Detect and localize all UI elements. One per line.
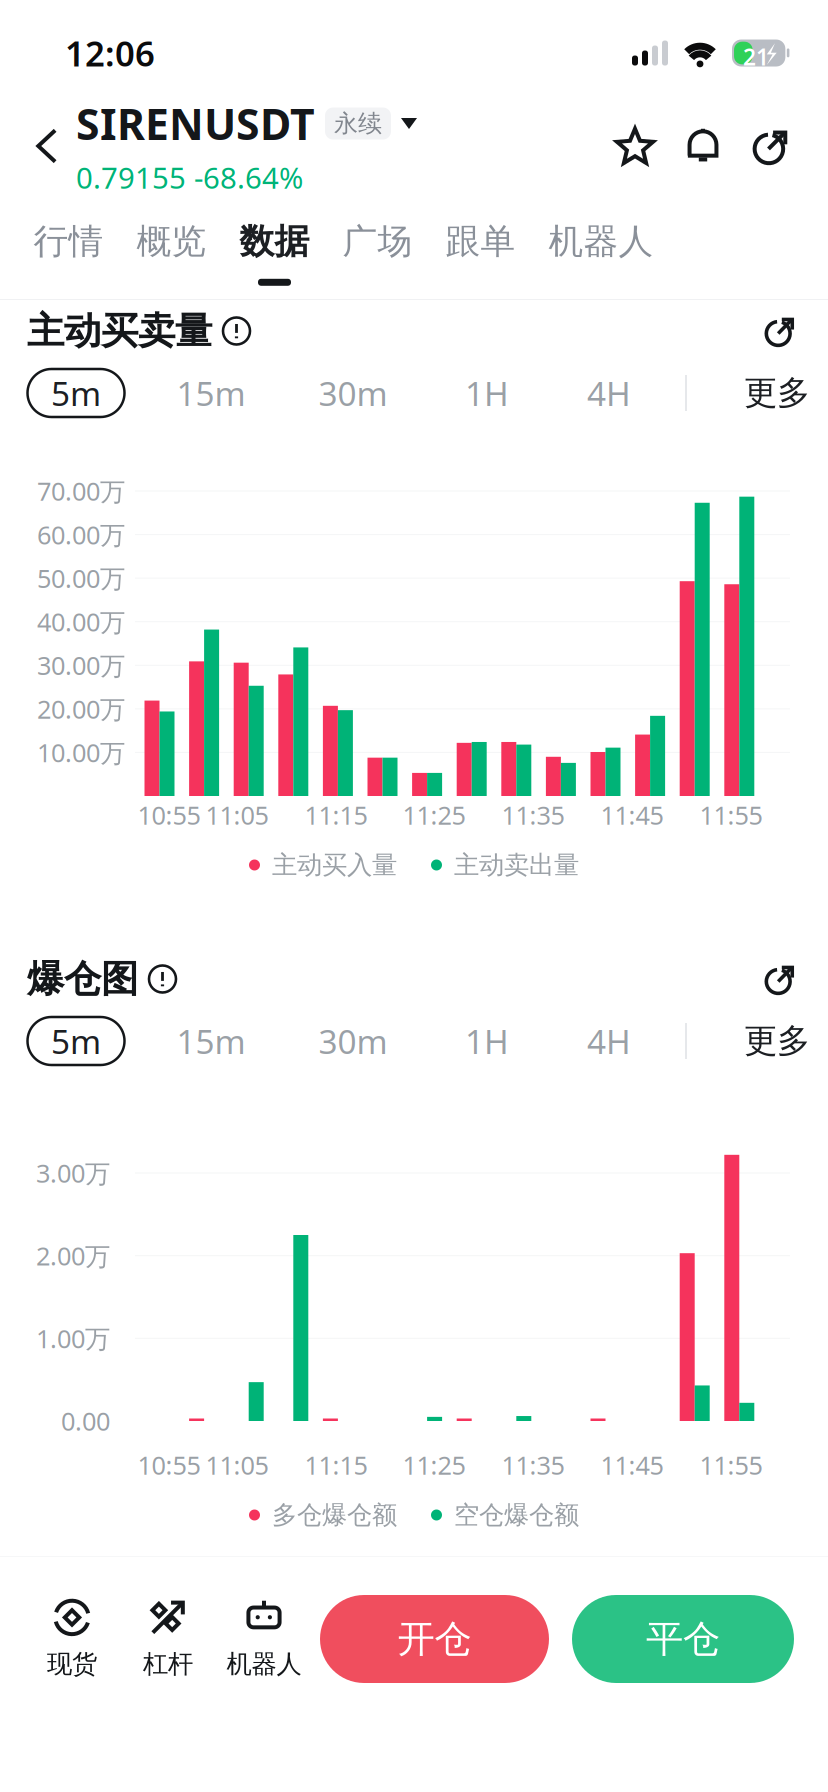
staticText: 数据 xyxy=(239,220,309,263)
staticText: 4H xyxy=(587,1019,631,1063)
button[interactable]: 开仓 xyxy=(320,1595,549,1683)
staticText: 11:15 xyxy=(304,1448,367,1482)
staticText: 机器人 xyxy=(226,1648,301,1679)
staticText: 1H xyxy=(465,371,509,415)
button[interactable]: Share xyxy=(750,125,792,167)
staticText: 行情 xyxy=(33,220,103,263)
staticText: 50.00万 xyxy=(37,561,125,595)
staticText: 爆仓图 xyxy=(27,956,138,1002)
staticText: 70.00万 xyxy=(37,474,125,508)
staticText: 11:05 xyxy=(205,798,268,832)
staticText: 40.00万 xyxy=(37,605,125,638)
staticText: 20.00万 xyxy=(37,692,125,726)
button[interactable]: 数据 xyxy=(223,220,326,286)
staticText: 3.00万 xyxy=(36,1156,110,1190)
staticText: 更多 xyxy=(744,1020,810,1061)
staticText: 10.00万 xyxy=(37,736,125,769)
button[interactable]: Expand xyxy=(762,961,798,997)
button[interactable]: Expand xyxy=(762,313,798,349)
button[interactable]: 跟单 xyxy=(429,220,532,286)
staticText: 多仓爆仓额 xyxy=(272,1499,397,1530)
staticText: 0.79155 -68.64% xyxy=(76,158,303,197)
staticText: 60.00万 xyxy=(37,518,125,551)
button[interactable]: 5m xyxy=(27,1017,124,1065)
staticText: 主动买入量 xyxy=(272,849,397,880)
staticText: 主动卖出量 xyxy=(454,849,579,880)
staticText: 11:25 xyxy=(402,798,465,832)
staticText: 开仓 xyxy=(397,1616,471,1662)
button[interactable]: Back xyxy=(18,117,76,175)
staticText: 广场 xyxy=(342,220,412,263)
staticText: 11:55 xyxy=(699,1448,762,1482)
staticText: 12:06 xyxy=(65,30,155,76)
staticText: 15m xyxy=(176,371,245,415)
staticText: 11:45 xyxy=(600,798,663,832)
button[interactable]: 概览 xyxy=(120,220,223,286)
button[interactable]: 5m xyxy=(27,369,124,417)
staticText: 11:35 xyxy=(501,1448,564,1482)
staticText: 2.00万 xyxy=(36,1239,110,1272)
staticText: 永续 xyxy=(334,109,382,138)
staticText: 4H xyxy=(587,371,631,415)
staticText: 跟单 xyxy=(445,220,515,263)
button[interactable]: 4H xyxy=(574,369,644,417)
button[interactable]: 现货 xyxy=(24,1598,120,1679)
button[interactable]: Favorite xyxy=(614,125,656,167)
button[interactable]: 4H xyxy=(574,1017,644,1065)
staticText: 杠杆 xyxy=(143,1648,193,1679)
staticText: 空仓爆仓额 xyxy=(454,1499,579,1530)
button[interactable]: 30m xyxy=(308,1017,398,1065)
button[interactable]: Alerts xyxy=(682,125,724,167)
staticText: 更多 xyxy=(744,372,810,413)
staticText: 11:35 xyxy=(501,798,564,832)
staticText: 5m xyxy=(51,371,101,415)
staticText: SIRENUSDT xyxy=(76,95,315,152)
staticText: 30m xyxy=(318,371,387,415)
button[interactable]: 1H xyxy=(452,369,522,417)
staticText: 1H xyxy=(465,1019,509,1063)
staticText: 0.00 xyxy=(61,1404,110,1438)
staticText: 机器人 xyxy=(548,220,653,263)
staticText: 平仓 xyxy=(646,1616,720,1662)
staticText: 11:25 xyxy=(402,1448,465,1482)
staticText: 21 xyxy=(743,42,769,72)
button[interactable]: 广场 xyxy=(326,220,429,286)
staticText: 15m xyxy=(176,1019,245,1063)
staticText: 10:55 xyxy=(137,798,200,832)
button[interactable]: 15m xyxy=(166,369,256,417)
button[interactable]: 更多 xyxy=(732,1017,822,1065)
staticText: 11:15 xyxy=(304,798,367,832)
staticText: 现货 xyxy=(47,1648,97,1679)
staticText: 11:05 xyxy=(205,1448,268,1482)
staticText: 概览 xyxy=(136,220,206,263)
button[interactable]: 15m xyxy=(166,1017,256,1065)
button[interactable]: 更多 xyxy=(732,369,822,417)
staticText: 1.00万 xyxy=(36,1321,110,1355)
button[interactable]: 杠杆 xyxy=(120,1598,216,1679)
button[interactable]: 1H xyxy=(452,1017,522,1065)
staticText: 5m xyxy=(51,1019,101,1063)
staticText: 30m xyxy=(318,1019,387,1063)
staticText: 11:55 xyxy=(699,798,762,832)
staticText: 10:55 xyxy=(137,1448,200,1482)
button[interactable]: 30m xyxy=(308,369,398,417)
button[interactable]: 行情 xyxy=(17,220,120,286)
staticText: 11:45 xyxy=(600,1448,663,1482)
staticText: 30.00万 xyxy=(37,648,125,682)
button[interactable]: 机器人 xyxy=(532,220,670,286)
button[interactable]: 平仓 xyxy=(572,1595,794,1683)
staticText: 主动买卖量 xyxy=(27,308,212,354)
button[interactable]: 机器人 xyxy=(216,1598,312,1679)
